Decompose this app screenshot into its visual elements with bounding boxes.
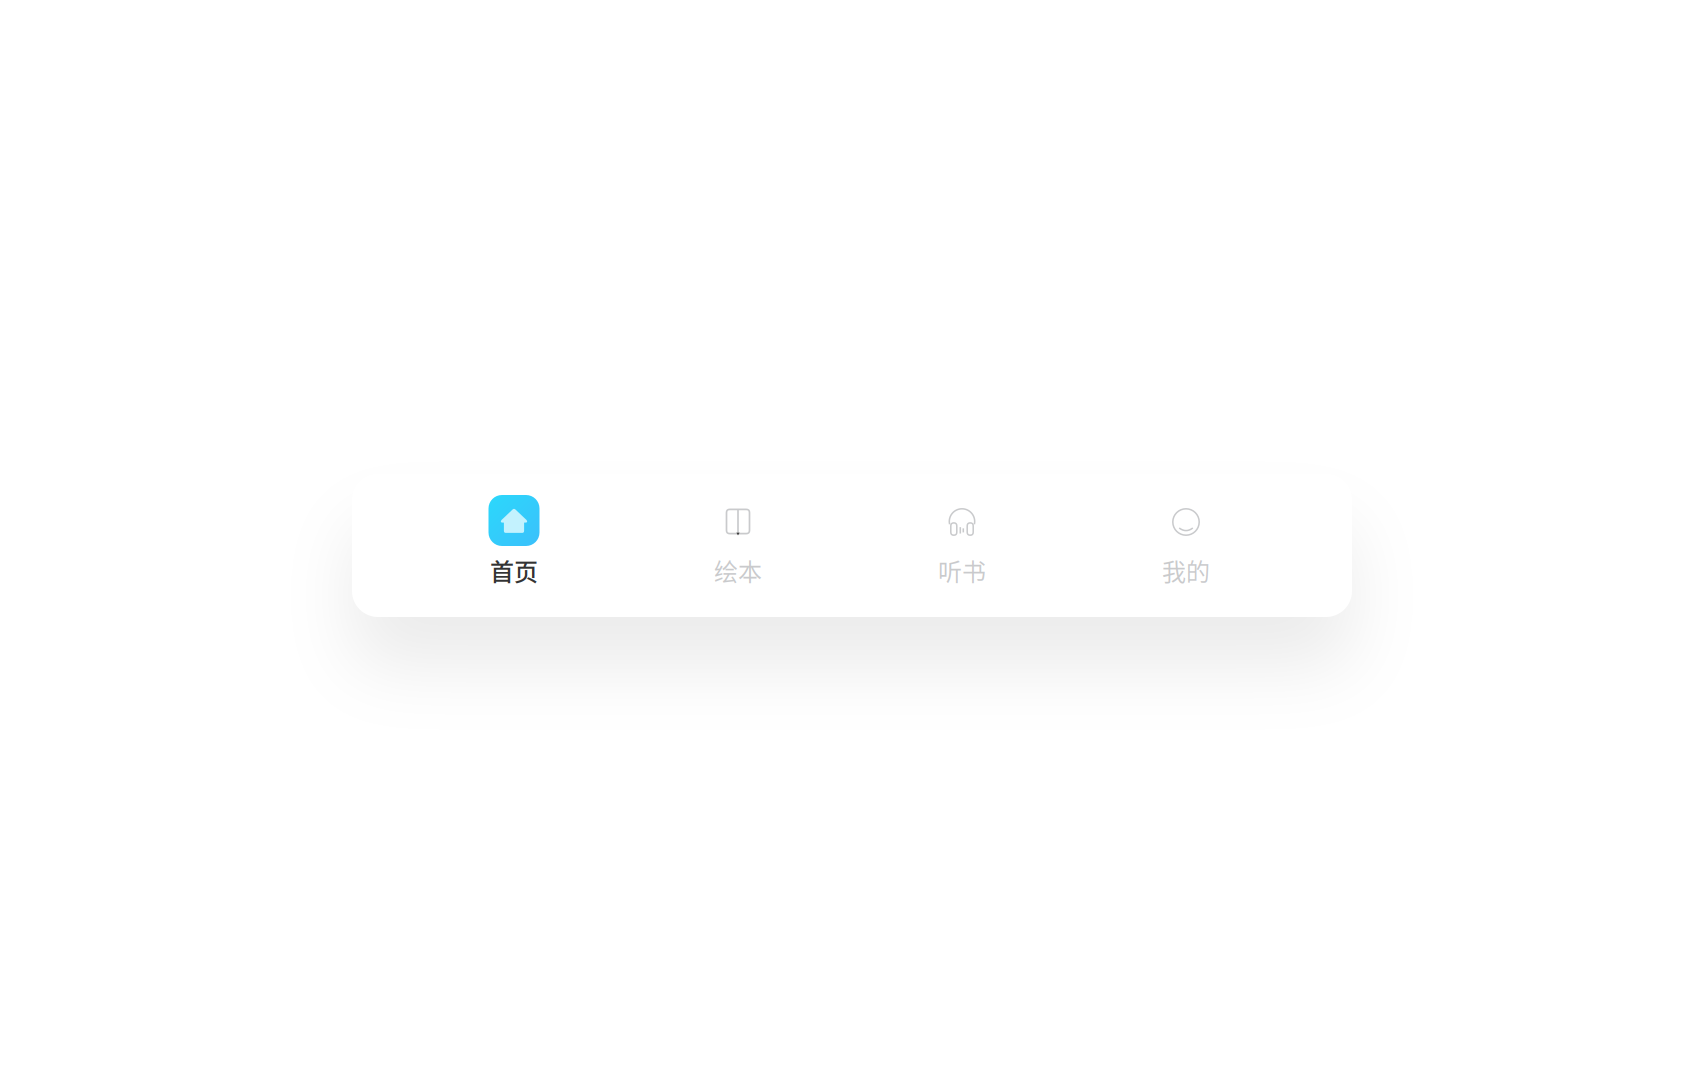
staticText: 我的: [1162, 553, 1210, 588]
staticText: 绘本: [714, 553, 762, 588]
staticText: 首页: [490, 553, 538, 588]
button[interactable]: 我的: [1074, 474, 1298, 617]
button[interactable]: 首页: [402, 474, 626, 617]
button[interactable]: 听书: [850, 474, 1074, 617]
staticText: 听书: [938, 553, 986, 588]
button[interactable]: 绘本: [626, 474, 850, 617]
